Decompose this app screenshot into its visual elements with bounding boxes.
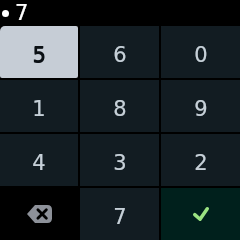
button[interactable]: 8: [80, 80, 159, 132]
button[interactable]: 5: [0, 26, 78, 78]
staticText: 7: [113, 205, 127, 229]
staticText: 5: [32, 43, 46, 67]
staticText: 9: [194, 97, 208, 121]
button[interactable]: 7: [80, 188, 159, 240]
staticText: 4: [32, 151, 46, 175]
staticText: 7: [15, 1, 29, 25]
button[interactable]: 6: [80, 26, 159, 78]
button[interactable]: 1: [0, 80, 78, 132]
button[interactable]: 3: [80, 134, 159, 186]
button[interactable]: 2: [161, 134, 240, 186]
staticText: 0: [194, 43, 208, 67]
staticText: 3: [113, 151, 127, 175]
button[interactable]: 4: [0, 134, 78, 186]
button[interactable]: 0: [161, 26, 240, 78]
staticText: 5: [32, 43, 46, 67]
staticText: 2: [194, 151, 208, 175]
staticText: 1: [32, 97, 46, 121]
staticText: 5: [32, 43, 46, 67]
button[interactable]: 9: [161, 80, 240, 132]
button[interactable]: Confirm: [161, 188, 240, 240]
staticText: 5: [33, 43, 47, 67]
staticText: 6: [113, 43, 127, 67]
staticText: 8: [113, 97, 127, 121]
button[interactable]: Backspace: [0, 188, 78, 240]
